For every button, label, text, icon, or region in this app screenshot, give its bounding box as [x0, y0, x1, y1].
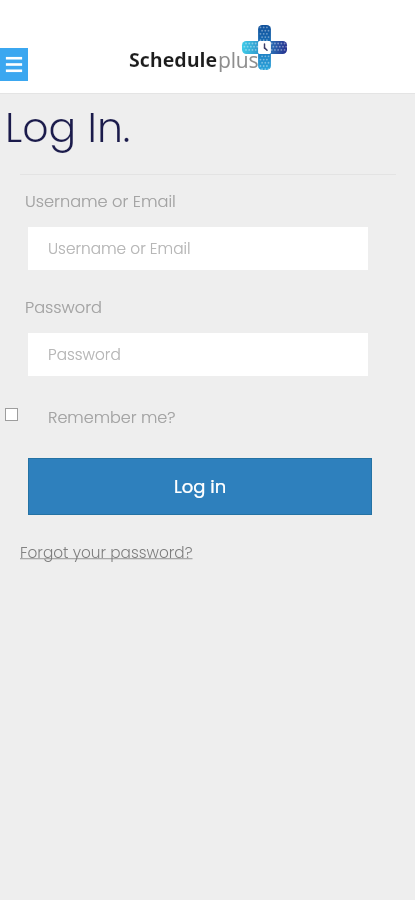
staticText: Password: [25, 296, 102, 319]
button[interactable]: Username or Email: [28, 227, 368, 270]
staticText: Username or Email: [25, 190, 176, 213]
button[interactable]: Remember me?: [0, 402, 200, 426]
button[interactable]: Password: [28, 333, 368, 376]
staticText: Username or Email: [48, 238, 191, 259]
button[interactable]: Forgot your password?: [20, 542, 193, 563]
button[interactable]: Open navigation menu: [0, 48, 28, 81]
staticText: plus: [218, 46, 259, 72]
staticText: Log in: [174, 474, 227, 499]
staticText: Schedule: [129, 46, 218, 72]
staticText: Password: [48, 344, 121, 365]
staticText: Remember me?: [48, 406, 176, 428]
button[interactable]: Log in: [28, 458, 372, 515]
staticText: Log In.: [5, 99, 131, 156]
